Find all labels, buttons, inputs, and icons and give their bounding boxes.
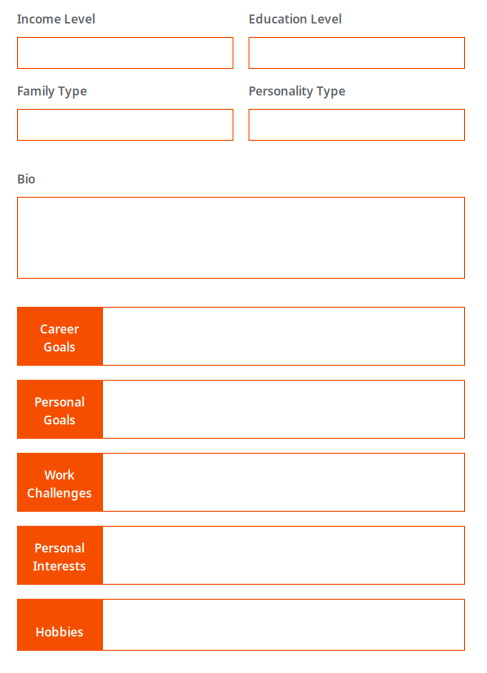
button[interactable]: Family Type <box>17 109 233 141</box>
staticText: Challenges <box>27 485 92 501</box>
staticText: Interests <box>33 558 86 574</box>
staticText: Personal <box>34 394 84 410</box>
staticText: Family Type <box>17 83 87 99</box>
staticText: Career <box>40 321 79 337</box>
button[interactable]: Personal <box>17 380 465 439</box>
staticText: Hobbies <box>35 624 83 640</box>
button[interactable]: Education Level <box>248 37 465 69</box>
staticText: Goals <box>43 339 75 355</box>
button[interactable]: Career <box>17 307 465 366</box>
staticText: Work <box>44 467 74 483</box>
staticText: Goals <box>43 412 75 428</box>
button[interactable]: Personal <box>17 526 465 585</box>
staticText: Income Level <box>17 11 95 27</box>
button[interactable]: Income Level <box>17 37 233 69</box>
button[interactable]: Hobbies <box>17 599 465 651</box>
staticText: Bio <box>17 171 35 187</box>
staticText: Personal <box>34 540 84 556</box>
button[interactable]: Personality Type <box>248 109 465 141</box>
button[interactable]: Work <box>17 453 465 512</box>
staticText: Personality Type <box>248 83 345 99</box>
button[interactable]: Bio <box>17 197 465 279</box>
staticText: Education Level <box>248 11 341 27</box>
